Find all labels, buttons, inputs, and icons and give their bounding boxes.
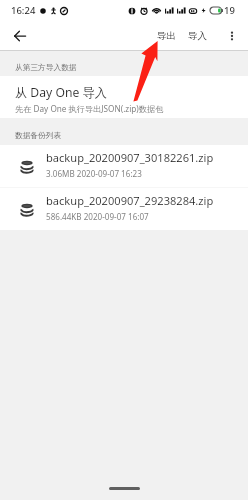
staticText: 从第三方导入数据	[15, 63, 77, 73]
button[interactable]: backup_20200907_29238284.zip	[0, 188, 248, 230]
staticText: backup_20200907_30182261.zip	[46, 150, 214, 165]
staticText: 先在 Day One 执行导出JSON(.zip)数据包	[15, 103, 164, 114]
staticText: 586.44KB 2020-09-07 16:07	[46, 211, 149, 222]
staticText: 从 Day One 导入	[15, 84, 107, 101]
staticText: 导入	[188, 30, 207, 42]
button[interactable]: More options	[222, 21, 242, 50]
staticText: 数据备份列表	[15, 131, 62, 141]
staticText: 导出	[157, 30, 176, 42]
staticText: 3.06MB 2020-09-07 16:23	[46, 168, 142, 179]
button[interactable]: backup_20200907_30182261.zip	[0, 145, 248, 187]
button[interactable]: 从 Day One 导入	[0, 76, 248, 118]
button[interactable]: 导入	[186, 21, 209, 50]
staticText: backup_20200907_29238284.zip	[46, 193, 214, 208]
staticText: 16:24	[11, 4, 36, 17]
button[interactable]: 导出	[155, 21, 178, 50]
button[interactable]: Back	[5, 21, 34, 50]
staticText: 19	[224, 4, 235, 17]
